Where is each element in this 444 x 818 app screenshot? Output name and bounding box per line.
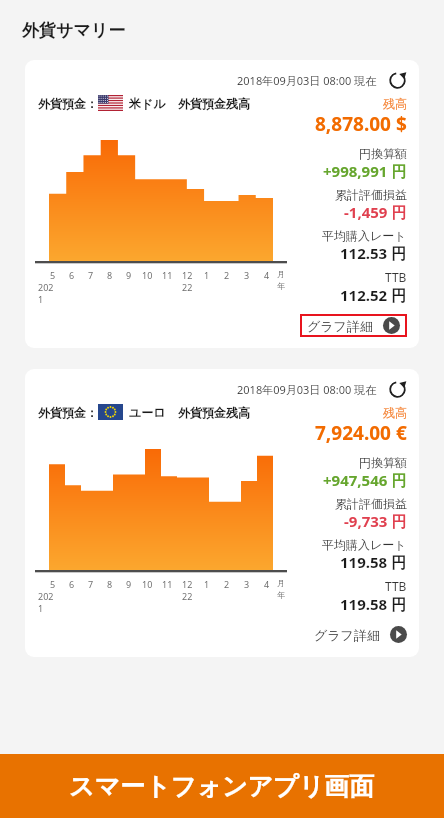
staticText: スマートフォンアプリ画面 — [69, 771, 375, 802]
staticText: 7,924.00 € — [315, 420, 407, 446]
staticText: 外貨サマリー — [22, 20, 126, 41]
staticText: 年 — [277, 590, 285, 600]
staticText: 累計評価損益 — [335, 187, 407, 202]
staticText: 円換算額 — [359, 146, 407, 161]
button[interactable]: 更新 — [387, 379, 407, 399]
staticText: 6 — [69, 269, 75, 281]
staticText: 2018年09月03日 08:00 現在 — [237, 382, 377, 397]
staticText: 3 — [244, 269, 250, 281]
staticText: 11 — [162, 578, 173, 590]
staticText: +947,546 円 — [323, 470, 407, 490]
staticText: -1,459 円 — [344, 202, 407, 222]
staticText: 7 — [88, 269, 94, 281]
staticText: グラフ詳細 — [307, 318, 373, 334]
staticText: 10 — [142, 578, 153, 590]
staticText: 平均購入レート — [322, 537, 407, 552]
staticText: 8 — [107, 578, 113, 590]
staticText: 119.58 円 — [340, 552, 407, 572]
staticText: 残高 — [383, 96, 407, 111]
staticText: 22 — [182, 281, 193, 293]
button[interactable]: グラフ詳細 — [314, 623, 407, 646]
staticText: +998,991 円 — [323, 161, 407, 181]
staticText: 5 — [50, 269, 56, 281]
staticText: 9 — [126, 578, 132, 590]
staticText: 残高 — [383, 405, 407, 420]
staticText: -9,733 円 — [344, 511, 407, 531]
staticText: 112.52 円 — [340, 285, 407, 305]
staticText: 月 — [277, 578, 285, 588]
button[interactable]: 更新 — [387, 70, 407, 90]
staticText: 2 — [224, 578, 230, 590]
staticText: 5 — [50, 578, 56, 590]
staticText: ユーロ — [129, 405, 166, 420]
staticText: 10 — [142, 269, 153, 281]
staticText: 月 — [277, 269, 285, 279]
staticText: 1 — [204, 578, 210, 590]
staticText: 12 — [182, 269, 193, 281]
staticText: 9 — [126, 269, 132, 281]
staticText: 累計評価損益 — [335, 496, 407, 511]
staticText: 1 — [204, 269, 210, 281]
staticText: TTB — [385, 578, 407, 594]
staticText: 8 — [107, 269, 113, 281]
staticText: 112.53 円 — [340, 243, 407, 263]
staticText: 米ドル — [129, 96, 166, 111]
staticText: 円換算額 — [359, 455, 407, 470]
staticText: 4 — [264, 269, 270, 281]
staticText: 2021 — [38, 590, 57, 614]
staticText: 外貨預金残高 — [178, 96, 250, 111]
staticText: 7 — [88, 578, 94, 590]
staticText: 2021 — [38, 281, 57, 305]
button[interactable]: グラフ詳細 — [300, 314, 407, 337]
staticText: 6 — [69, 578, 75, 590]
staticText: 2018年09月03日 08:00 現在 — [237, 73, 377, 88]
staticText: 外貨預金： — [38, 96, 98, 111]
staticText: 年 — [277, 281, 285, 291]
staticText: 外貨預金残高 — [178, 405, 250, 420]
staticText: 11 — [162, 269, 173, 281]
staticText: 2 — [224, 269, 230, 281]
staticText: 4 — [264, 578, 270, 590]
staticText: 平均購入レート — [322, 228, 407, 243]
staticText: グラフ詳細 — [314, 627, 380, 643]
staticText: 22 — [182, 590, 193, 602]
staticText: 119.58 円 — [340, 594, 407, 614]
staticText: 3 — [244, 578, 250, 590]
staticText: TTB — [385, 269, 407, 285]
staticText: 外貨預金： — [38, 405, 98, 420]
staticText: 8,878.00 $ — [315, 111, 407, 137]
staticText: 12 — [182, 578, 193, 590]
